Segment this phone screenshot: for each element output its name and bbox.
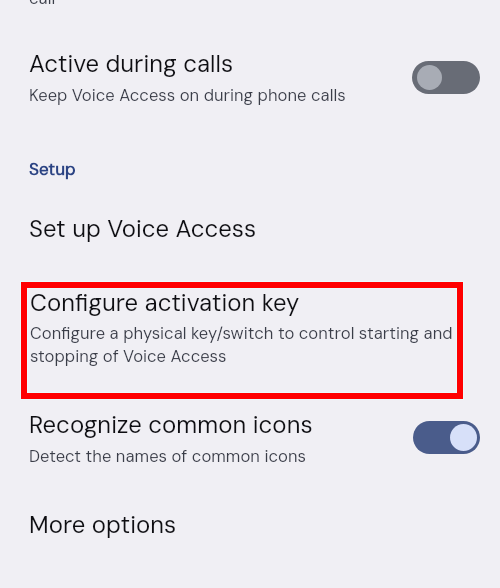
staticText: Active during calls: [29, 48, 234, 79]
staticText: Configure activation key: [30, 287, 300, 318]
staticText: call: [29, 0, 56, 10]
button[interactable]: call: [0, 0, 500, 1]
staticText: Recognize common icons: [29, 409, 313, 440]
staticText: Detect the names of common icons: [29, 446, 306, 468]
button[interactable]: Recognize common icons: [0, 404, 500, 474]
staticText: More options: [29, 509, 177, 540]
staticText: Set up Voice Access: [29, 213, 257, 244]
button[interactable]: Active during calls: [0, 36, 500, 110]
staticText: Keep Voice Access on during phone calls: [29, 85, 346, 107]
staticText: Setup: [29, 158, 76, 180]
button[interactable]: Recognize common icons, on: [413, 421, 480, 454]
button[interactable]: Configure activation key: [28, 289, 456, 392]
staticText: Configure a physical key/switch to contr…: [30, 323, 458, 367]
button[interactable]: Active during calls, off: [412, 61, 480, 94]
button[interactable]: Setup: [0, 152, 500, 186]
button[interactable]: Set up Voice Access: [0, 202, 500, 250]
button[interactable]: More options: [0, 498, 500, 546]
